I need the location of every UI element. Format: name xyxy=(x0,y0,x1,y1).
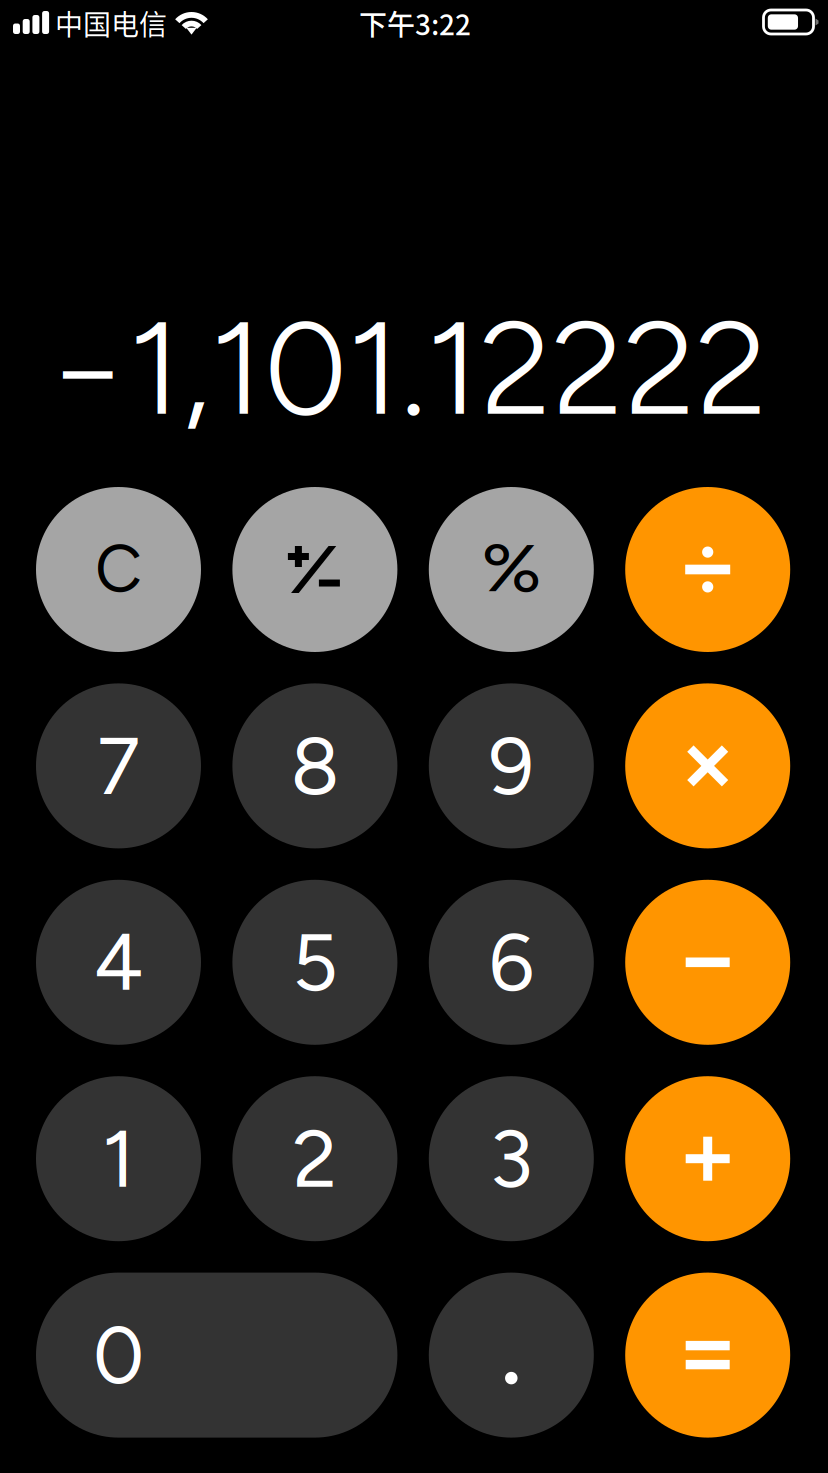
button[interactable]: Decimal point xyxy=(429,1273,594,1438)
staticText: 1 xyxy=(102,1111,135,1207)
button[interactable]: 0 xyxy=(36,1273,397,1438)
staticText: % xyxy=(486,529,537,608)
staticText: 7 xyxy=(97,718,140,814)
staticText: 3 xyxy=(489,1111,533,1207)
button[interactable]: 2 xyxy=(232,1076,397,1241)
button[interactable]: 9 xyxy=(429,683,594,848)
staticText: 0 xyxy=(93,1307,144,1403)
staticText: C xyxy=(95,529,142,608)
staticText: 2 xyxy=(292,1111,337,1207)
button[interactable]: Minus xyxy=(625,880,790,1045)
button[interactable]: Plus xyxy=(625,1076,790,1241)
button[interactable]: Equals xyxy=(625,1273,790,1438)
staticText: 6 xyxy=(489,914,534,1010)
button[interactable]: Plus minus xyxy=(232,487,397,652)
button[interactable]: 1 xyxy=(36,1076,201,1241)
staticText: 9 xyxy=(489,718,534,814)
button[interactable]: 3 xyxy=(429,1076,594,1241)
button[interactable]: 8 xyxy=(232,683,397,848)
button[interactable]: 5 xyxy=(232,880,397,1045)
staticText: −1,101.12222 xyxy=(47,290,768,446)
button[interactable]: 6 xyxy=(429,880,594,1045)
button[interactable]: 4 xyxy=(36,880,201,1045)
staticText: 下午3:22 xyxy=(359,3,471,43)
button[interactable]: Percent xyxy=(429,487,594,652)
button[interactable]: Divide xyxy=(625,487,790,652)
button[interactable]: 7 xyxy=(36,683,201,848)
staticText: 8 xyxy=(290,718,339,814)
staticText: 5 xyxy=(292,914,338,1010)
staticText: 中国电信 xyxy=(55,3,167,43)
button[interactable]: Multiply xyxy=(625,683,790,848)
button[interactable]: Clear xyxy=(36,487,201,652)
staticText: 4 xyxy=(93,914,143,1010)
